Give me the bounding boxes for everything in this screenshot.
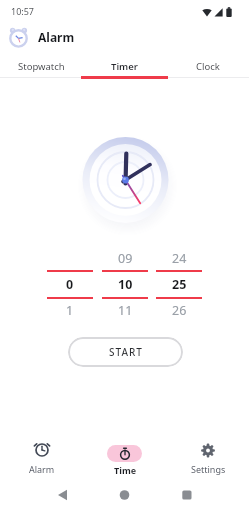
staticText: Settings [191, 463, 226, 475]
button[interactable]: 0 [46, 276, 94, 292]
button[interactable]: Settings [177, 436, 238, 478]
staticText: Alarm [29, 463, 55, 475]
staticText: Timer [111, 60, 138, 73]
staticText: 11 [118, 302, 133, 318]
button[interactable]: Clock [166, 56, 249, 76]
button[interactable]: Timer [83, 56, 166, 76]
staticText: Alarm [38, 29, 75, 45]
staticText: Stopwatch [18, 60, 65, 73]
staticText: Clock [196, 60, 220, 73]
button[interactable]: Time [94, 436, 155, 478]
staticText: START [109, 345, 143, 359]
staticText: 1 [66, 302, 74, 318]
staticText: 25 [172, 276, 187, 292]
button[interactable]: 10 [101, 276, 149, 292]
staticText: 26 [172, 302, 187, 318]
staticText: 10 [118, 276, 133, 292]
button[interactable]: 25 [155, 276, 203, 292]
button[interactable]: Stopwatch [0, 56, 83, 76]
staticText: Time [114, 464, 137, 476]
staticText: 09 [118, 250, 133, 266]
button[interactable]: Alarm [11, 436, 72, 478]
staticText: 0 [66, 276, 74, 292]
staticText: 10:57 [11, 5, 35, 17]
staticText: 24 [172, 250, 187, 266]
button[interactable]: START [68, 337, 183, 367]
